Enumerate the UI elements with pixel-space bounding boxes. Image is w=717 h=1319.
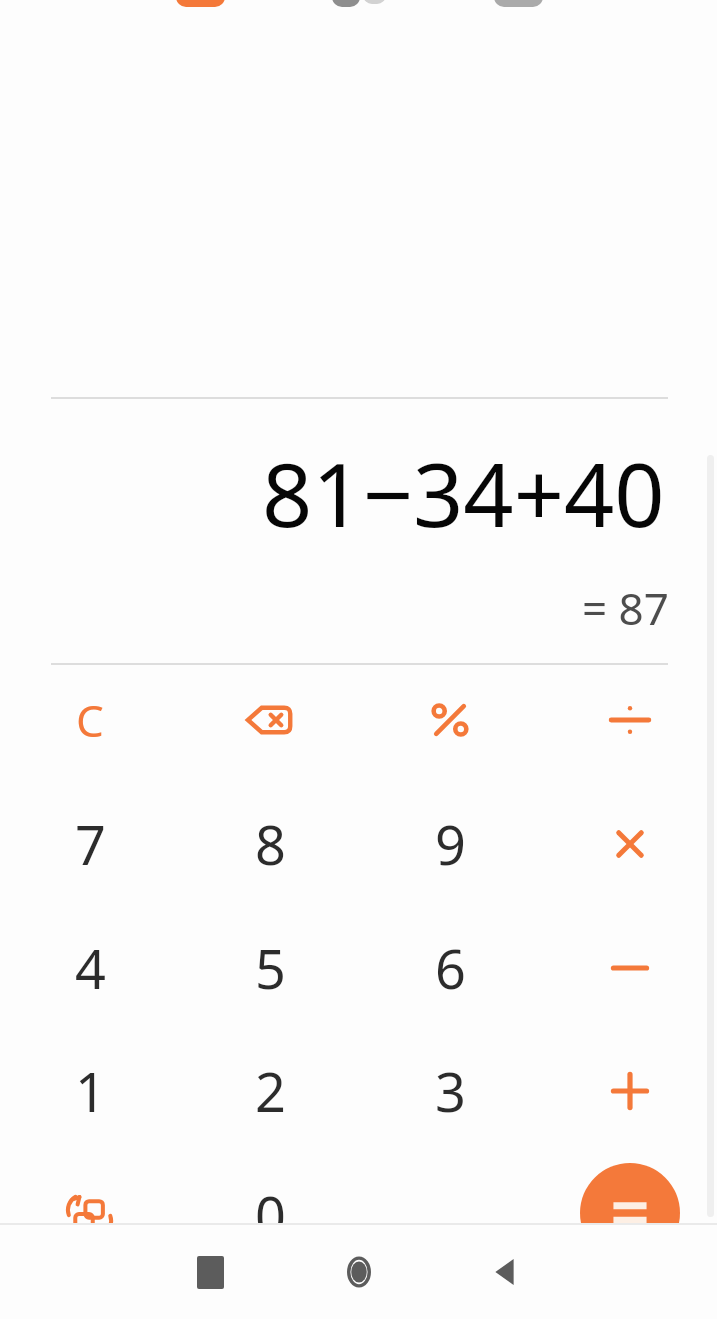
- button[interactable]: Backspace: [225, 676, 315, 764]
- button[interactable]: Unit converter: [45, 1171, 135, 1259]
- staticText: 4: [75, 931, 106, 1005]
- staticText: C: [76, 690, 104, 750]
- button[interactable]: Back: [479, 1245, 533, 1299]
- staticText: 1: [75, 1054, 106, 1128]
- button[interactable]: 3: [405, 1047, 495, 1135]
- button[interactable]: [494, 0, 543, 7]
- button[interactable]: C: [45, 676, 135, 764]
- button[interactable]: [332, 0, 360, 7]
- button[interactable]: 2: [225, 1047, 315, 1135]
- button[interactable]: 8: [225, 800, 315, 888]
- button[interactable]: 9: [405, 800, 495, 888]
- button[interactable]: 6: [405, 924, 495, 1012]
- staticText: 81−34+40: [262, 433, 665, 553]
- staticText: 6: [435, 931, 466, 1005]
- button[interactable]: 4: [45, 924, 135, 1012]
- button[interactable]: Recent apps: [183, 1245, 237, 1299]
- staticText: 2: [255, 1054, 286, 1128]
- staticText: 9: [435, 807, 466, 881]
- button[interactable]: 7: [45, 800, 135, 888]
- button[interactable]: Equals: [580, 1163, 680, 1263]
- staticText: 8: [255, 807, 286, 881]
- staticText: 5: [255, 931, 286, 1005]
- button[interactable]: 1: [45, 1047, 135, 1135]
- button[interactable]: 5: [225, 924, 315, 1012]
- staticText: 3: [435, 1054, 466, 1128]
- button[interactable]: Divide: [585, 676, 675, 764]
- staticText: 7: [75, 807, 106, 881]
- button[interactable]: Multiply: [585, 800, 675, 888]
- button[interactable]: [176, 0, 225, 7]
- button[interactable]: Minus: [585, 924, 675, 1012]
- staticText: 0: [255, 1178, 286, 1252]
- button[interactable]: Home: [332, 1245, 386, 1299]
- staticText: = 87: [582, 578, 669, 634]
- button[interactable]: Percent: [405, 676, 495, 764]
- button[interactable]: 0: [225, 1171, 315, 1259]
- button[interactable]: Plus: [585, 1047, 675, 1135]
